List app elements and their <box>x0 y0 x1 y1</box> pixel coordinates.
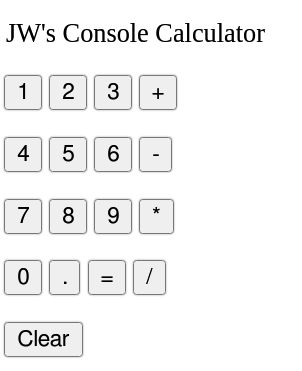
button[interactable]: = <box>88 260 126 295</box>
button[interactable]: 9 <box>94 199 132 234</box>
button[interactable]: * <box>139 199 174 234</box>
staticText: = <box>100 266 114 289</box>
staticText: . <box>62 266 68 289</box>
button[interactable]: + <box>139 75 177 110</box>
staticText: Clear <box>17 328 70 351</box>
staticText: + <box>151 81 165 104</box>
staticText: 7 <box>17 205 30 228</box>
button[interactable]: 8 <box>49 199 87 234</box>
staticText: / <box>146 266 153 289</box>
button[interactable]: 6 <box>94 137 132 172</box>
button[interactable]: 0 <box>4 260 42 295</box>
staticText: . <box>62 266 68 289</box>
staticText: 4 <box>17 143 30 166</box>
staticText: Clear <box>17 328 70 351</box>
staticText: 9 <box>107 205 120 228</box>
button[interactable]: Clear <box>4 322 83 357</box>
button[interactable]: 4 <box>4 137 42 172</box>
button[interactable]: 2 <box>49 75 87 110</box>
staticText: 4 <box>17 143 30 166</box>
staticText: 2 <box>62 81 75 104</box>
button[interactable]: 7 <box>4 199 42 234</box>
staticText: * <box>152 205 161 228</box>
button[interactable]: - <box>139 137 172 172</box>
staticText: 8 <box>62 205 75 228</box>
button[interactable]: 5 <box>49 137 87 172</box>
button[interactable]: 3 <box>94 75 132 110</box>
staticText: * <box>152 205 161 228</box>
staticText: - <box>152 143 160 166</box>
staticText: - <box>152 143 160 166</box>
staticText: 5 <box>62 143 75 166</box>
staticText: 1 <box>17 81 30 104</box>
staticText: 0 <box>17 266 30 289</box>
staticText: 9 <box>107 205 120 228</box>
staticText: 2 <box>62 81 75 104</box>
staticText: 1 <box>17 81 30 104</box>
staticText: 0 <box>17 266 30 289</box>
staticText: JW's Console Calculator <box>6 19 265 48</box>
button[interactable]: / <box>133 260 166 295</box>
staticText: JW's Console Calculator <box>6 19 265 48</box>
staticText: 3 <box>107 81 120 104</box>
button[interactable]: . <box>49 260 80 295</box>
staticText: / <box>146 266 153 289</box>
staticText: = <box>100 266 114 289</box>
staticText: + <box>151 81 165 104</box>
button[interactable]: 1 <box>4 75 42 110</box>
staticText: 6 <box>107 143 120 166</box>
staticText: 5 <box>62 143 75 166</box>
staticText: 8 <box>62 205 75 228</box>
staticText: 6 <box>107 143 120 166</box>
staticText: 3 <box>107 81 120 104</box>
staticText: 7 <box>17 205 30 228</box>
